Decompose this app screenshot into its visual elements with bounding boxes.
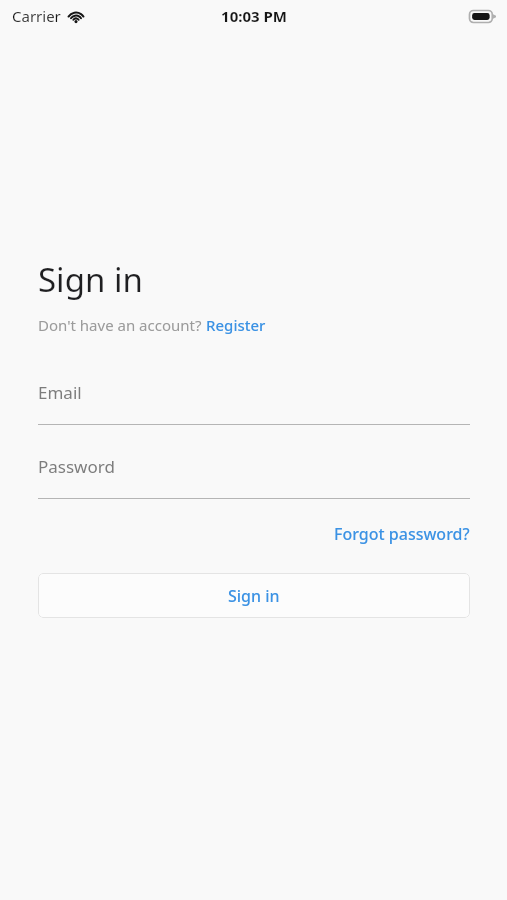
staticText: Sign in — [228, 585, 280, 607]
button[interactable]: Register — [206, 315, 266, 335]
staticText: Email — [38, 381, 82, 404]
staticText: Password — [38, 455, 115, 478]
other: Wi-Fi signal — [67, 9, 85, 23]
staticText: Sign in — [38, 257, 143, 302]
staticText: 10:03 PM — [221, 6, 287, 26]
staticText: Don't have an account? — [38, 315, 206, 335]
button[interactable]: Sign in — [38, 573, 470, 618]
button[interactable]: Forgot password? — [334, 520, 470, 548]
staticText: Carrier — [12, 6, 61, 26]
button[interactable]: Email — [38, 381, 470, 425]
button[interactable]: Password — [38, 455, 470, 499]
staticText: Register — [206, 315, 266, 335]
other: Battery full — [469, 10, 496, 23]
staticText: Forgot password? — [334, 523, 470, 545]
